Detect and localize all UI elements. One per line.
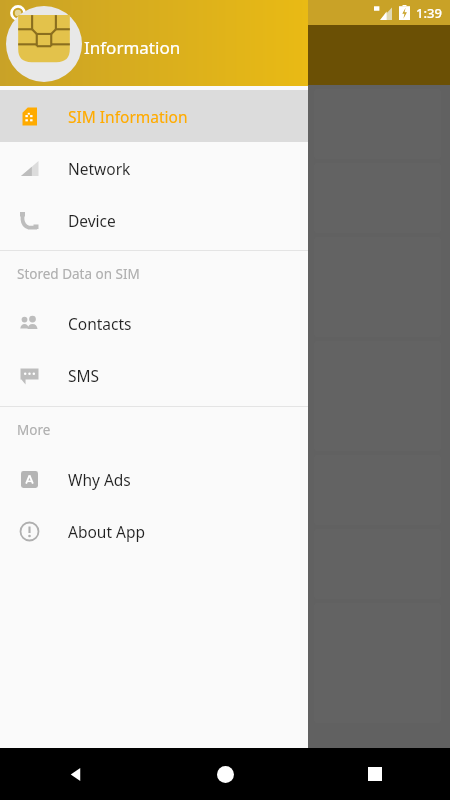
staticText: About App (68, 521, 145, 542)
staticText: SIM Information (68, 106, 188, 127)
staticText: Stored Data on SIM (17, 265, 140, 283)
button[interactable]: About App (0, 505, 308, 557)
staticText: Information (84, 36, 181, 59)
staticText: Device (68, 210, 116, 231)
staticText: SMS (68, 365, 100, 386)
button[interactable]: Recent apps (300, 748, 450, 800)
staticText: Contacts (68, 313, 132, 334)
staticText: More (17, 421, 51, 439)
button[interactable]: SMS (0, 349, 308, 401)
button[interactable]: Home (150, 748, 300, 800)
button[interactable]: Contacts (0, 297, 308, 349)
button[interactable]: Network (0, 142, 308, 194)
button[interactable]: Back (0, 748, 150, 800)
button[interactable]: Device (0, 194, 308, 246)
button[interactable]: SIM Information (0, 90, 308, 142)
button[interactable]: Why Ads (0, 453, 308, 505)
staticText: Why Ads (68, 469, 131, 490)
staticText: 1:39 (416, 4, 442, 22)
staticText: Network (68, 158, 131, 179)
